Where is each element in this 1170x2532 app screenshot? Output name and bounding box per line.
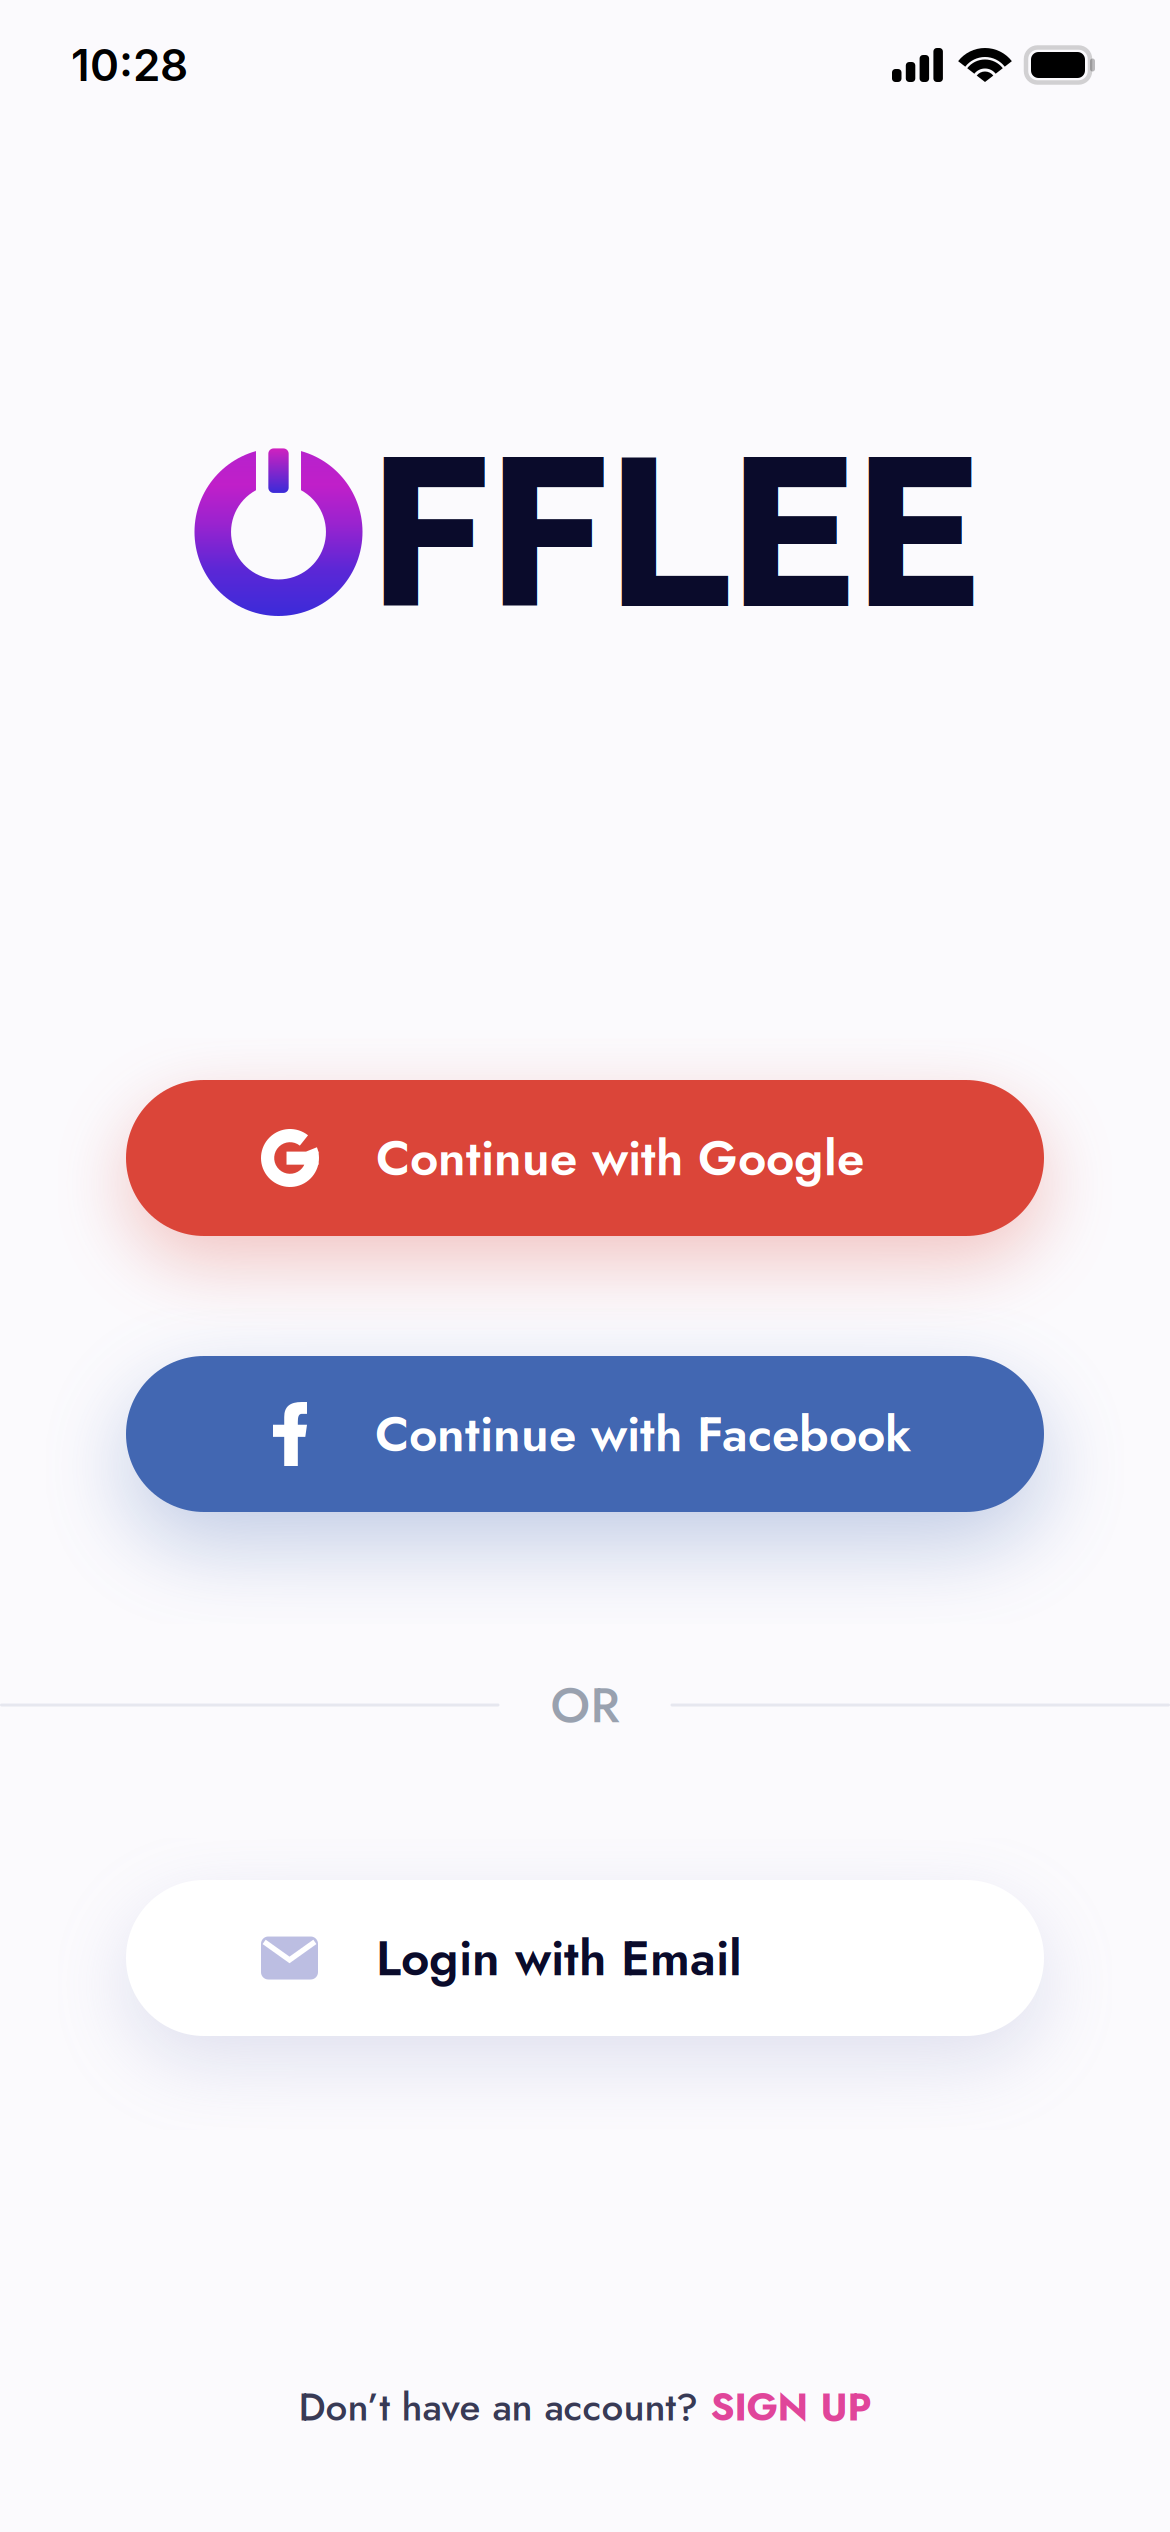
- staticText: OR: [550, 1669, 619, 1741]
- staticText: Continue with Google: [376, 1122, 864, 1194]
- staticText: Don’t have an account?: [298, 2379, 698, 2435]
- button[interactable]: Continue with Google: [126, 1080, 1044, 1236]
- button[interactable]: Don’t have an account?: [298, 2378, 871, 2436]
- staticText: FFLEE: [369, 409, 979, 655]
- staticText: Continue with Facebook: [375, 1398, 911, 1470]
- staticText: 10:28: [71, 38, 188, 92]
- button[interactable]: Login with Email: [126, 1880, 1044, 2036]
- staticText: Login with Email: [376, 1922, 742, 1994]
- button[interactable]: Continue with Facebook: [126, 1356, 1044, 1512]
- staticText: SIGN UP: [710, 2379, 871, 2435]
